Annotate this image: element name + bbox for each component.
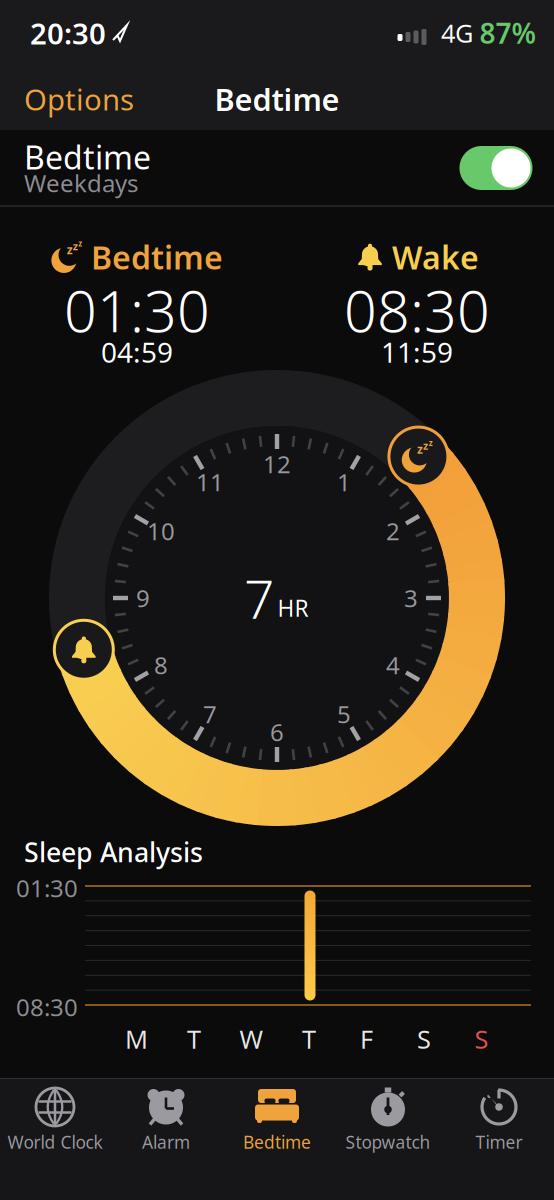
staticText: Wake: [392, 236, 479, 278]
staticText: 5: [337, 698, 351, 730]
staticText: z: [423, 439, 428, 453]
staticText: 4G: [441, 16, 473, 50]
staticText: z: [417, 441, 423, 457]
staticText: 2: [386, 515, 400, 547]
staticText: Options: [24, 79, 134, 118]
staticText: 11: [196, 466, 224, 498]
button[interactable]: World Clock: [0, 1081, 110, 1171]
staticText: 4: [386, 649, 400, 681]
staticText: S: [417, 1022, 431, 1056]
staticText: z: [73, 239, 78, 253]
staticText: 9: [136, 582, 150, 614]
button[interactable]: [459, 146, 532, 190]
button[interactable]: Options: [24, 79, 134, 118]
staticText: Bedtime: [214, 79, 339, 119]
staticText: z: [67, 242, 73, 257]
staticText: Stopwatch: [345, 1130, 430, 1153]
staticText: 12: [263, 448, 291, 480]
staticText: 01:30: [16, 872, 78, 904]
button[interactable]: Timer: [444, 1081, 554, 1171]
staticText: 10: [147, 515, 175, 547]
staticText: F: [360, 1022, 373, 1056]
staticText: 1: [337, 466, 351, 498]
button[interactable]: Bedtime: [222, 1081, 332, 1171]
staticText: 08:30: [344, 272, 490, 348]
staticText: Bedtime: [91, 236, 223, 278]
staticText: 04:59: [101, 333, 173, 371]
staticText: 08:30: [16, 991, 78, 1023]
staticText: 6: [270, 716, 284, 748]
staticText: z: [429, 438, 433, 448]
staticText: 01:30: [64, 272, 210, 348]
button[interactable]: Stopwatch: [333, 1081, 443, 1171]
staticText: S: [474, 1022, 488, 1056]
staticText: Bedtime: [243, 1130, 311, 1153]
staticText: M: [125, 1022, 148, 1056]
staticText: 7: [203, 698, 217, 730]
staticText: World Clock: [7, 1130, 102, 1153]
staticText: Sleep Analysis: [24, 834, 203, 870]
staticText: T: [187, 1022, 201, 1056]
staticText: Alarm: [142, 1130, 190, 1153]
staticText: Bedtime: [24, 136, 151, 178]
staticText: z: [78, 238, 82, 249]
staticText: 7: [244, 563, 274, 633]
staticText: T: [302, 1022, 316, 1056]
staticText: Timer: [475, 1130, 522, 1153]
staticText: W: [239, 1022, 263, 1056]
staticText: 3: [404, 582, 418, 614]
staticText: 87%: [479, 14, 536, 52]
staticText: 8: [154, 649, 168, 681]
staticText: 11:59: [381, 333, 453, 371]
staticText: Weekdays: [24, 167, 138, 199]
staticText: HR: [277, 593, 308, 623]
staticText: 20:30: [30, 13, 106, 52]
button[interactable]: Alarm: [111, 1081, 221, 1171]
